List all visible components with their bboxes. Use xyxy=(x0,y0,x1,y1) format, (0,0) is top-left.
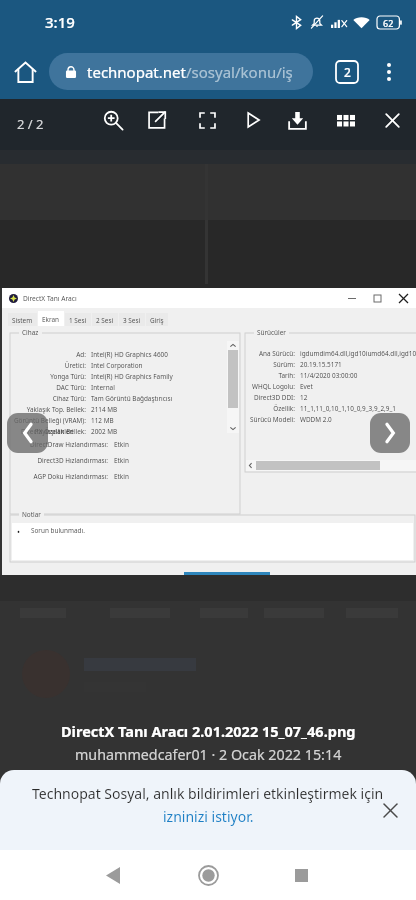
staticText: Cihaz xyxy=(22,328,39,337)
staticText: Etkin xyxy=(114,472,129,481)
staticText: 11_1,11_0,10_1,10_0,9_3,9_2,9_1 xyxy=(300,404,396,413)
staticText: 3 Sesi xyxy=(123,316,141,325)
staticText: Ana Sürücü: xyxy=(258,349,295,358)
button[interactable]: Home xyxy=(184,851,232,899)
staticText: Etkin xyxy=(114,440,129,449)
staticText: • xyxy=(17,526,21,537)
staticText: Intel(R) HD Graphics 4600 xyxy=(91,350,168,359)
button[interactable]: Giriş xyxy=(150,313,164,327)
button[interactable]: Close xyxy=(370,98,414,142)
staticText: Yaklaşık Top. Bellek: xyxy=(26,405,86,414)
staticText: Technopat Sosyal, anlık bildirimleri etk… xyxy=(32,784,384,803)
staticText: Ekran xyxy=(42,315,60,324)
staticText: Notlar xyxy=(22,510,41,519)
staticText: Sürücüler xyxy=(257,328,286,337)
staticText: 2 xyxy=(344,64,351,80)
staticText: Direct3D Hızlandırması: xyxy=(37,456,108,465)
staticText: AGP Doku Hızlandırması: xyxy=(33,472,108,481)
button[interactable]: 1 Sesi xyxy=(69,313,87,327)
button[interactable]: Open in new window xyxy=(135,98,179,142)
button[interactable]: 2 Sesi xyxy=(96,313,114,327)
button[interactable]: Ekran xyxy=(42,311,60,327)
staticText: DirectX Özellikleri xyxy=(21,427,74,436)
button[interactable]: Dismiss xyxy=(372,792,408,828)
staticText: Cihaz Türü: xyxy=(52,394,86,403)
button[interactable]: More options xyxy=(369,52,409,92)
staticText: Intel(R) HD Graphics Family xyxy=(91,372,173,381)
staticText: Tarih: xyxy=(278,371,295,380)
button[interactable]: Next image xyxy=(370,413,410,453)
staticText: /sosyal/konu/iş xyxy=(186,62,293,82)
button[interactable]: Tabs xyxy=(327,52,367,92)
staticText: Sürüm: xyxy=(273,360,295,369)
staticText: Sorun bulunmadı. xyxy=(31,526,85,535)
staticText: 1 Sesi xyxy=(69,316,87,325)
staticText: muhammedcafer01 · 2 Ocak 2022 15:14 xyxy=(75,745,342,764)
staticText: Üretici: xyxy=(64,361,86,370)
staticText: Paylaşılan Bellek: xyxy=(34,427,86,436)
staticText: 2114 MB xyxy=(91,405,118,414)
button[interactable]: Download xyxy=(275,98,319,142)
staticText: 2 / 2 xyxy=(17,115,44,133)
staticText: 112 MB xyxy=(91,416,114,425)
button[interactable]: Minimize xyxy=(336,288,368,309)
button[interactable]: 3 Sesi xyxy=(123,313,141,327)
staticText: DirectX Tanı Aracı 2.01.2022 15_07_46.pn… xyxy=(61,721,356,741)
staticText: igdumdim64.dll,igd10iumd64.dll,igd10i xyxy=(300,349,416,358)
staticText: Ad: xyxy=(76,350,86,359)
staticText: Sürücü Modeli: xyxy=(250,415,295,424)
staticText: 62 xyxy=(383,17,394,29)
staticText: Evet xyxy=(300,382,313,391)
button[interactable]: Fullscreen xyxy=(185,98,229,142)
button[interactable]: Maximize xyxy=(361,288,393,309)
button[interactable]: Sistem xyxy=(12,313,33,327)
staticText: DAC Türü: xyxy=(56,383,86,392)
staticText: Yonga Türü: xyxy=(50,372,86,381)
button[interactable]: Home xyxy=(6,53,44,91)
staticText: 2 Sesi xyxy=(96,316,114,325)
staticText: Internal xyxy=(91,383,115,392)
staticText: Görüntü Belleği (VRAM): xyxy=(13,416,86,425)
button[interactable]: Previous image xyxy=(7,413,48,453)
staticText: 12 xyxy=(300,393,308,402)
button[interactable]: Play slideshow xyxy=(231,98,275,142)
staticText: 2002 MB xyxy=(91,427,118,436)
staticText: Tam Görüntü Bağdaştırıcısı xyxy=(91,394,173,403)
staticText: technopat.net xyxy=(87,62,186,82)
staticText: DirectX Tanı Aracı xyxy=(23,294,77,303)
staticText: Sistem xyxy=(12,316,33,325)
staticText: Özellik: xyxy=(273,404,295,413)
button[interactable]: Recent apps xyxy=(277,851,325,899)
button[interactable]: Gallery grid xyxy=(324,98,368,142)
button[interactable]: Zoom in xyxy=(91,98,135,142)
staticText: Intel Corporation xyxy=(91,361,143,370)
button[interactable]: Close window xyxy=(387,288,416,309)
staticText: 11/4/2020 03:00:00 xyxy=(300,371,358,380)
staticText: WDDM 2.0 xyxy=(300,415,332,424)
button[interactable]: technopat.net xyxy=(49,53,313,90)
staticText: Etkin xyxy=(114,456,129,465)
button[interactable]: Back xyxy=(89,851,137,899)
staticText: WHQL Logolu: xyxy=(251,382,295,391)
button[interactable]: izninizi istiyor. xyxy=(163,807,254,826)
staticText: Giriş xyxy=(150,316,164,325)
staticText: Direct3D DDI: xyxy=(254,393,295,402)
staticText: 3:19 xyxy=(45,12,75,32)
staticText: DirectDraw Hızlandırması: xyxy=(29,440,108,449)
staticText: 20.19.15.5171 xyxy=(300,360,342,369)
